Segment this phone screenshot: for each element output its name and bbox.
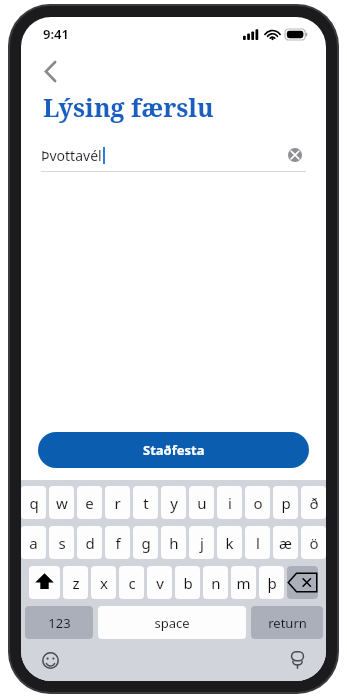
button[interactable]: i [217, 486, 242, 519]
button[interactable]: Voice input [284, 647, 310, 673]
staticText: o [253, 493, 263, 513]
staticText: q [29, 493, 39, 513]
button[interactable]: ö [301, 526, 326, 559]
staticText: n [211, 573, 221, 593]
button[interactable]: Shift [29, 566, 60, 599]
staticText: 9:41 [43, 25, 69, 43]
staticText: þ [267, 573, 277, 593]
staticText: j [200, 533, 204, 553]
button[interactable]: x [91, 566, 116, 599]
staticText: h [169, 533, 179, 553]
staticText: return [268, 614, 307, 632]
button[interactable]: a [21, 526, 46, 559]
button[interactable]: j [189, 526, 214, 559]
button[interactable]: 123 [25, 606, 93, 639]
staticText: ð [309, 493, 319, 513]
staticText: space [154, 614, 190, 632]
staticText: Staðfesta [143, 441, 205, 459]
staticText: Þvottavél [41, 146, 102, 165]
staticText: l [256, 533, 260, 553]
button[interactable]: Back [32, 53, 68, 89]
button[interactable]: z [63, 566, 88, 599]
button[interactable]: h [161, 526, 186, 559]
button[interactable]: u [189, 486, 214, 519]
button[interactable]: m [231, 566, 256, 599]
staticText: i [228, 493, 232, 513]
staticText: g [141, 533, 151, 553]
button[interactable]: s [49, 526, 74, 559]
button[interactable]: g [133, 526, 158, 559]
button[interactable]: r [105, 486, 130, 519]
button[interactable]: o [245, 486, 270, 519]
button[interactable]: Emoji [37, 647, 63, 673]
button[interactable]: l [245, 526, 270, 559]
button[interactable]: d [77, 526, 102, 559]
button[interactable]: Backspace [287, 566, 318, 599]
staticText: a [29, 533, 38, 553]
button[interactable]: Clear text [284, 144, 306, 166]
staticText: z [72, 573, 80, 593]
button[interactable]: k [217, 526, 242, 559]
button[interactable]: ð [301, 486, 326, 519]
staticText: k [225, 533, 234, 553]
button[interactable]: q [21, 486, 46, 519]
button[interactable]: e [77, 486, 102, 519]
button[interactable]: y [161, 486, 186, 519]
staticText: w [56, 493, 68, 513]
staticText: b [183, 573, 193, 593]
button[interactable]: p [273, 486, 298, 519]
staticText: d [85, 533, 95, 553]
button[interactable]: c [119, 566, 144, 599]
button[interactable]: v [147, 566, 172, 599]
button[interactable]: n [203, 566, 228, 599]
button[interactable]: return [251, 606, 323, 639]
button[interactable]: space [98, 606, 246, 639]
button[interactable]: b [175, 566, 200, 599]
staticText: v [156, 573, 164, 593]
staticText: Lýsing færslu [43, 90, 214, 124]
staticText: x [100, 573, 108, 593]
staticText: f [115, 533, 121, 553]
staticText: ö [309, 533, 319, 553]
button[interactable]: Staðfesta [38, 432, 309, 468]
button[interactable]: þ [259, 566, 284, 599]
staticText: æ [279, 533, 292, 553]
staticText: e [85, 493, 94, 513]
staticText: s [58, 533, 66, 553]
button[interactable]: æ [273, 526, 298, 559]
staticText: m [236, 573, 251, 593]
staticText: r [114, 493, 121, 513]
staticText: t [143, 493, 149, 513]
staticText: 123 [48, 614, 71, 632]
staticText: p [281, 493, 291, 513]
button[interactable]: w [49, 486, 74, 519]
button[interactable]: t [133, 486, 158, 519]
staticText: y [170, 493, 178, 513]
staticText: c [128, 573, 136, 593]
staticText: u [197, 493, 207, 513]
button[interactable]: f [105, 526, 130, 559]
